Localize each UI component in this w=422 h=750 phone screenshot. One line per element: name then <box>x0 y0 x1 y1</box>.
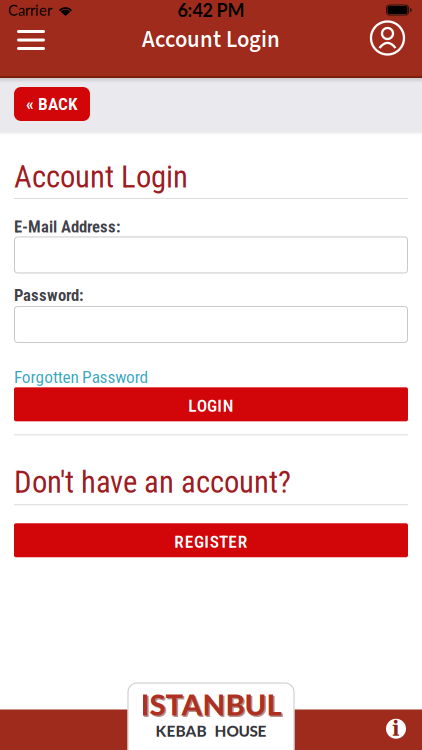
staticText: Password: <box>14 285 84 305</box>
button[interactable]: Information <box>383 714 409 743</box>
staticText: LOGIN <box>188 396 234 416</box>
staticText: Forgotten Password <box>14 367 149 387</box>
button[interactable]: « BACK <box>14 87 90 121</box>
staticText: Account Login <box>142 24 280 56</box>
staticText: Don't have an account? <box>14 464 291 500</box>
staticText: i <box>392 717 400 740</box>
button[interactable]: Menu <box>14 21 48 59</box>
button[interactable]: Account <box>370 22 422 57</box>
staticText: ISTANBUL <box>140 686 281 722</box>
staticText: 6:42 PM <box>177 0 244 21</box>
button[interactable]: LOGIN <box>14 387 408 421</box>
staticText: KEBAB HOUSE <box>155 722 266 740</box>
staticText: Carrier <box>8 1 52 19</box>
staticText: « BACK <box>26 94 78 114</box>
textField[interactable] <box>14 314 408 335</box>
staticText: E-Mail Address: <box>14 217 121 236</box>
button[interactable]: Forgotten Password <box>14 367 149 387</box>
staticText: REGISTER <box>174 532 248 552</box>
textField[interactable] <box>14 244 408 266</box>
staticText: Account Login <box>14 159 188 195</box>
button[interactable]: REGISTER <box>14 523 408 557</box>
